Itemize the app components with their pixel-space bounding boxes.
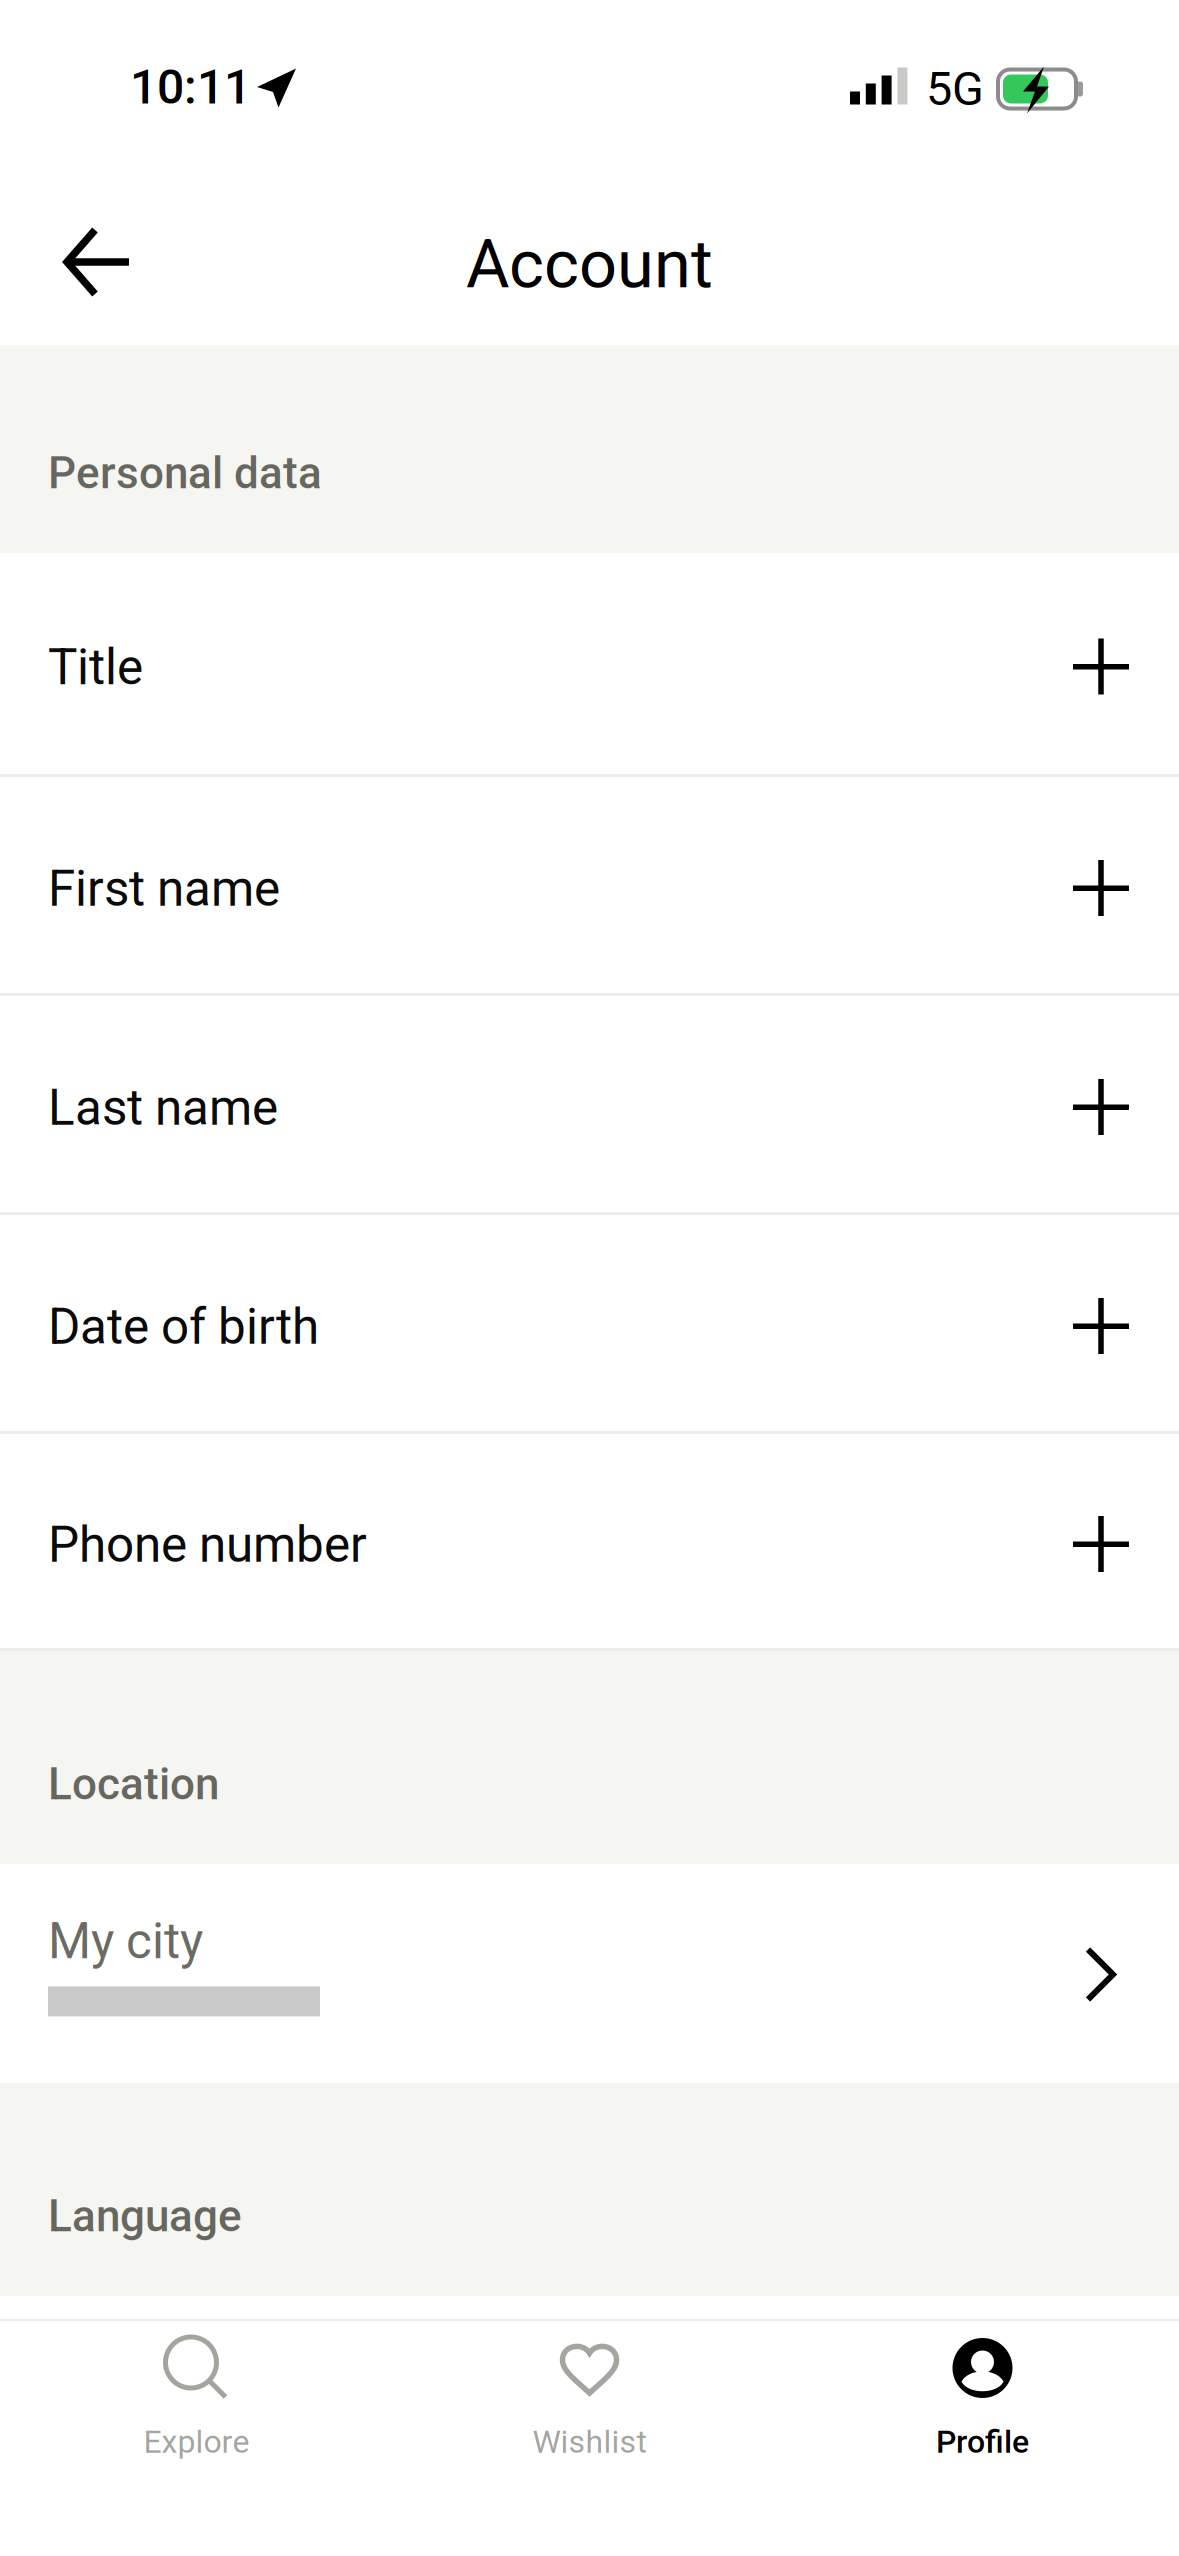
staticText: Location	[48, 1758, 219, 1810]
staticText: Explore	[143, 2423, 249, 2460]
staticText: Language	[48, 2190, 242, 2242]
button[interactable]: Profile	[786, 2321, 1179, 2506]
staticText: My city	[48, 1913, 203, 1970]
button[interactable]: Phone number	[0, 1434, 1179, 1651]
button[interactable]: Back	[0, 160, 180, 345]
button[interactable]: Date of birth	[0, 1215, 1179, 1434]
button[interactable]: Explore	[0, 2321, 393, 2506]
staticText: Phone number	[48, 1516, 367, 1574]
staticText: 5G	[926, 62, 984, 116]
staticText: Wishlist	[532, 2423, 646, 2460]
button[interactable]: Wishlist	[393, 2321, 786, 2506]
staticText: Profile	[936, 2423, 1029, 2460]
staticText: 10:11	[130, 59, 251, 115]
button[interactable]: First name	[0, 777, 1179, 996]
staticText: Account	[466, 225, 713, 303]
staticText: Personal data	[48, 447, 322, 499]
button[interactable]: My city	[0, 1864, 1179, 2083]
button[interactable]: Title	[0, 553, 1179, 777]
staticText: Date of birth	[48, 1298, 319, 1356]
staticText: Title	[48, 639, 143, 696]
staticText: Last name	[48, 1079, 278, 1137]
staticText: First name	[48, 860, 280, 918]
button[interactable]: Last name	[0, 996, 1179, 1215]
